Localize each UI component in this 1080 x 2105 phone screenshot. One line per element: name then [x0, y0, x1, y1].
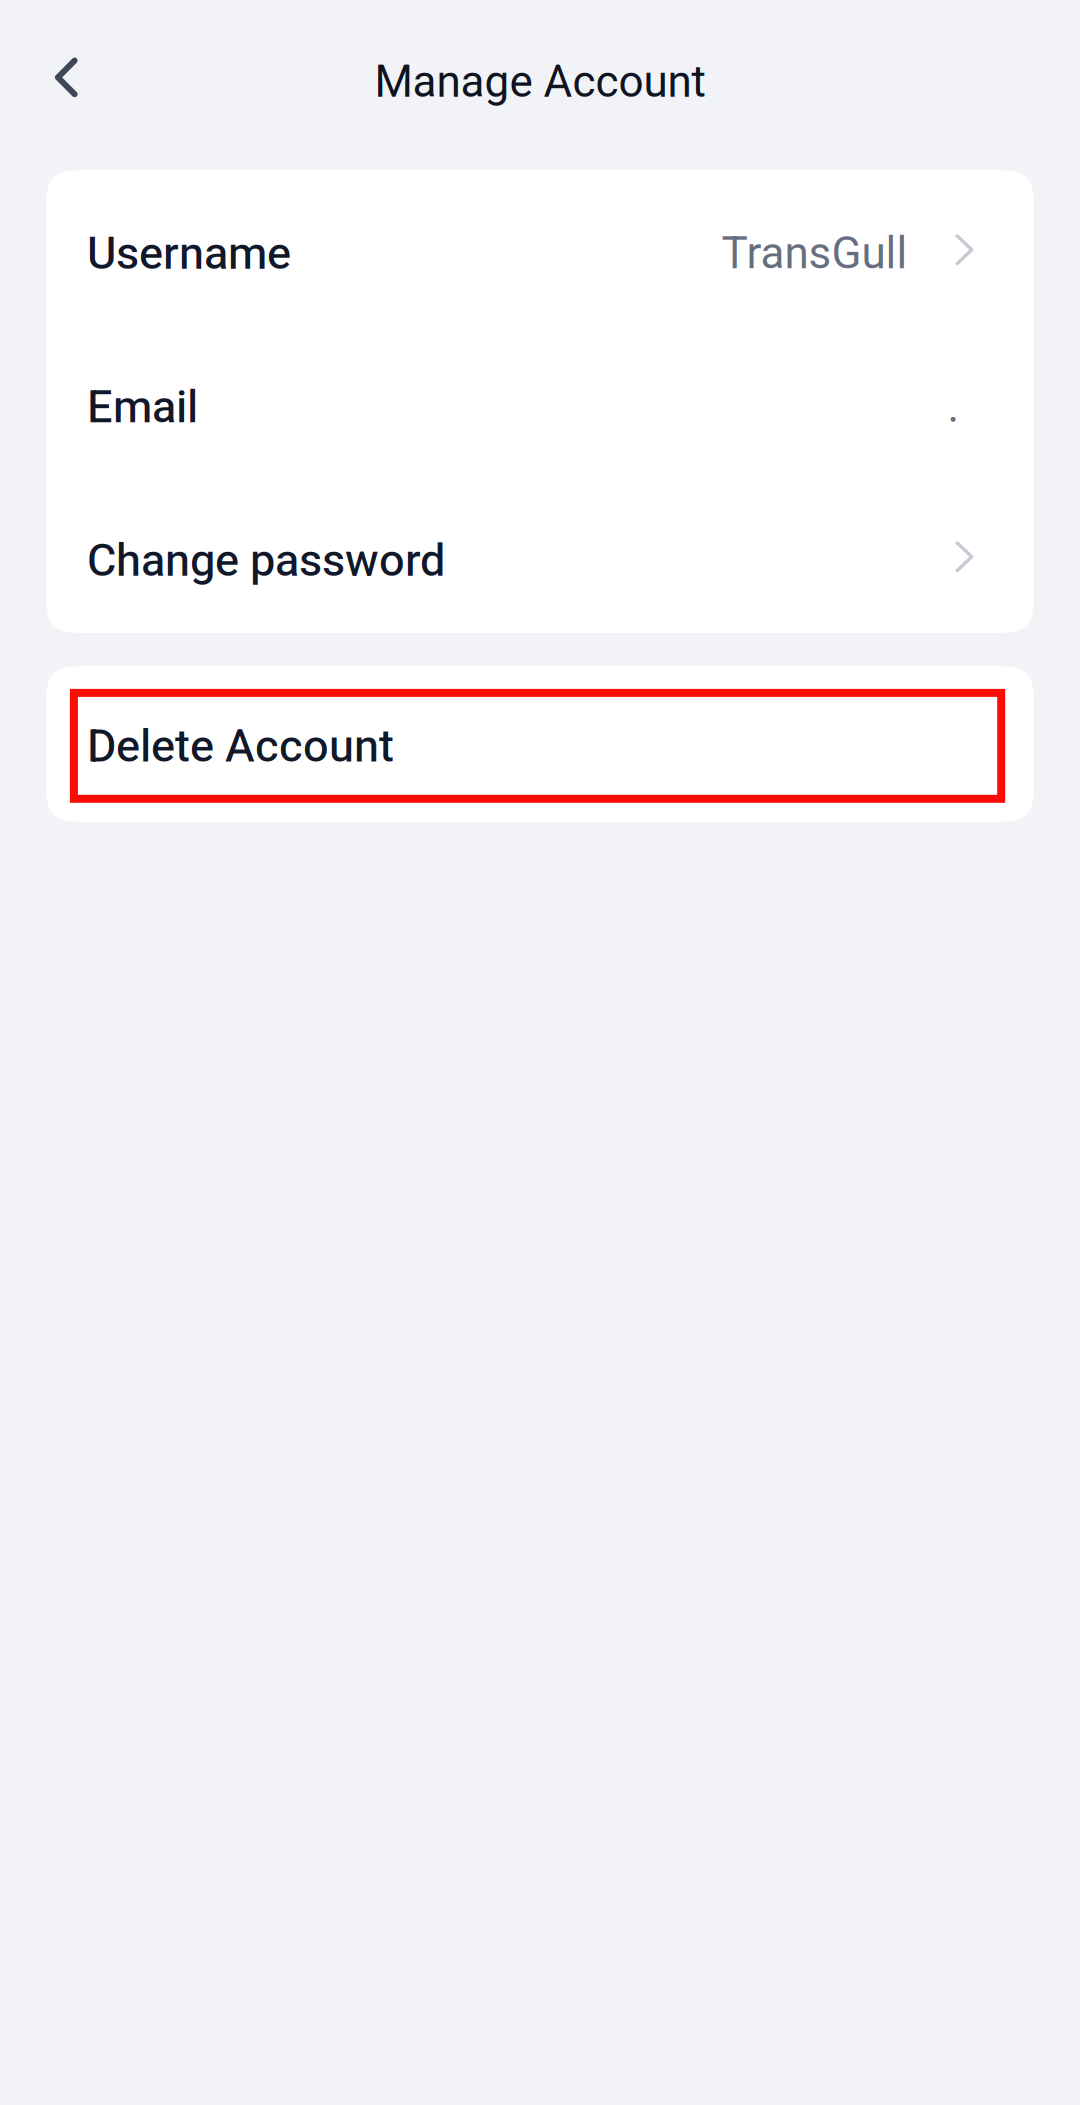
staticText: Manage Account: [374, 56, 705, 108]
button[interactable]: Delete Account: [46, 666, 1034, 822]
staticText: Username: [87, 227, 291, 280]
staticText: Email: [87, 380, 198, 433]
staticText: TransGull: [721, 227, 907, 279]
button[interactable]: Back: [29, 37, 104, 117]
staticText: .: [947, 381, 959, 433]
staticText: Delete Account: [87, 720, 394, 772]
button[interactable]: Username: [46, 176, 1034, 330]
staticText: Change password: [87, 534, 445, 587]
button[interactable]: Email: [46, 330, 1034, 483]
button[interactable]: Change password: [46, 483, 1034, 633]
